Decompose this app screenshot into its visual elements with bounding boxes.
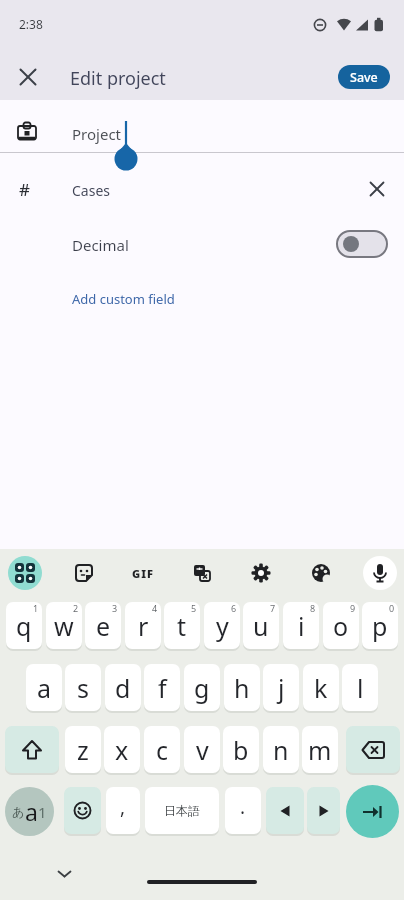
button[interactable]	[12, 61, 44, 93]
staticText: 2	[73, 602, 79, 614]
button[interactable]: c	[144, 726, 180, 773]
staticText: Project	[72, 124, 121, 144]
button[interactable]: z	[65, 726, 101, 773]
staticText: a	[37, 671, 52, 705]
button[interactable]: a	[26, 664, 62, 711]
staticText: z	[77, 733, 89, 767]
staticText: x	[115, 733, 129, 767]
staticText: 6	[231, 602, 237, 614]
staticText: b	[233, 733, 249, 767]
staticText: y	[216, 609, 229, 643]
button[interactable]: h	[224, 664, 260, 711]
staticText: k	[314, 671, 328, 705]
staticText: 2:38	[19, 16, 43, 32]
staticText: 3	[112, 602, 118, 614]
staticText: Save	[350, 69, 378, 86]
button[interactable]: o	[323, 602, 359, 649]
button[interactable]	[304, 556, 338, 590]
button[interactable]	[346, 785, 399, 838]
button[interactable]: Save	[338, 65, 390, 89]
button[interactable]: j	[263, 664, 299, 711]
staticText: l	[357, 671, 364, 705]
staticText: 7	[270, 602, 276, 614]
button[interactable]	[363, 556, 397, 590]
button[interactable]: x	[104, 726, 140, 773]
button[interactable]: r	[125, 602, 161, 649]
staticText: 5	[191, 602, 197, 614]
staticText: #	[19, 178, 30, 201]
staticText: 1	[33, 602, 39, 614]
staticText: j	[278, 671, 285, 705]
staticText: 日本語	[164, 803, 200, 818]
staticText: p	[372, 609, 388, 643]
button[interactable]	[307, 787, 340, 834]
staticText: GIF	[132, 566, 154, 581]
staticText: Edit project	[70, 66, 166, 91]
staticText: 8	[310, 602, 316, 614]
button[interactable]: m	[302, 726, 338, 773]
staticText: u	[253, 609, 269, 643]
staticText: w	[54, 609, 74, 643]
button[interactable]: Add custom field	[60, 285, 190, 313]
button[interactable]	[5, 726, 59, 773]
button[interactable]: i	[283, 602, 319, 649]
button[interactable]: ,	[106, 787, 140, 834]
staticText: i	[298, 609, 305, 643]
staticText: e	[96, 609, 111, 643]
button[interactable]: l	[342, 664, 378, 711]
staticText: Add custom field	[72, 290, 175, 308]
staticText: d	[115, 671, 131, 705]
button[interactable]: p	[362, 602, 398, 649]
button[interactable]	[0, 101, 404, 152]
button[interactable]: 日本語	[145, 787, 219, 834]
button[interactable]: .	[225, 787, 261, 834]
staticText: v	[196, 733, 209, 767]
button[interactable]	[67, 556, 101, 590]
button[interactable]: g	[184, 664, 220, 711]
button[interactable]: n	[263, 726, 299, 773]
button[interactable]	[185, 556, 219, 590]
staticText: Decimal	[72, 235, 129, 255]
staticText: 1	[38, 802, 47, 822]
staticText: r	[138, 609, 149, 643]
button[interactable]	[346, 726, 400, 773]
staticText: 0	[389, 602, 395, 614]
button[interactable]: e	[85, 602, 121, 649]
button[interactable]: GIF	[123, 556, 163, 590]
staticText: 4	[152, 602, 158, 614]
staticText: a	[25, 796, 38, 827]
staticText: m	[308, 733, 332, 767]
button[interactable]	[266, 787, 304, 834]
button[interactable]: q	[6, 602, 42, 649]
staticText: q	[16, 609, 32, 643]
staticText: ,	[120, 794, 126, 820]
button[interactable]: d	[105, 664, 141, 711]
staticText: f	[158, 671, 167, 705]
button[interactable]: y	[204, 602, 240, 649]
staticText: h	[234, 671, 250, 705]
button[interactable]: f	[144, 664, 180, 711]
staticText: s	[77, 671, 89, 705]
button[interactable]	[336, 230, 388, 258]
staticText: .	[240, 794, 246, 820]
staticText: n	[273, 733, 289, 767]
button[interactable]	[51, 862, 78, 886]
button[interactable]: s	[65, 664, 101, 711]
staticText: t	[177, 609, 187, 643]
button[interactable]: w	[46, 602, 82, 649]
staticText: o	[333, 609, 349, 643]
staticText: 9	[350, 602, 356, 614]
button[interactable]: あ	[5, 787, 54, 836]
button[interactable]	[362, 174, 392, 204]
button[interactable]: v	[184, 726, 220, 773]
button[interactable]	[64, 787, 101, 834]
button[interactable]: u	[243, 602, 279, 649]
button[interactable]: k	[303, 664, 339, 711]
button[interactable]	[244, 556, 278, 590]
button[interactable]	[8, 556, 42, 590]
button[interactable]: b	[223, 726, 259, 773]
staticText: Cases	[72, 181, 111, 200]
staticText: g	[194, 671, 210, 705]
staticText: あ	[12, 804, 25, 819]
button[interactable]: t	[164, 602, 200, 649]
